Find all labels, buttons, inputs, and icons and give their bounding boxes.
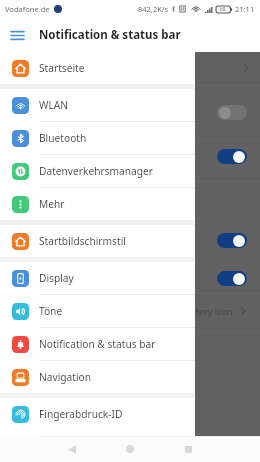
button[interactable]: Toggle on xyxy=(217,233,247,248)
staticText: WLAN xyxy=(39,98,69,112)
staticText: Startseite xyxy=(39,61,85,75)
staticText: Notification & status bar xyxy=(39,337,156,351)
button[interactable]: Startbildschirmstil xyxy=(0,225,195,257)
button[interactable]: Home xyxy=(117,436,143,462)
button[interactable]: WLAN xyxy=(0,89,195,121)
button[interactable]: Toggle on xyxy=(217,149,247,164)
button[interactable]: Display xyxy=(0,262,195,294)
button[interactable]: Notification & status bar xyxy=(0,328,195,360)
staticText: Notification & status bar xyxy=(39,27,181,43)
staticText: 21:11 xyxy=(235,4,255,14)
staticText: 68 xyxy=(220,6,226,13)
staticText: 842,2K/s xyxy=(138,4,169,14)
button[interactable]: Mehr xyxy=(0,188,195,220)
staticText: Töne xyxy=(39,304,63,318)
staticText: Navigation xyxy=(39,370,92,384)
staticText: Vodafone.de xyxy=(5,4,50,14)
staticText: Bluetooth xyxy=(39,131,87,145)
staticText: Mehr xyxy=(39,197,65,211)
button[interactable]: Open navigation drawer xyxy=(0,18,34,52)
button[interactable]: Back xyxy=(59,436,85,462)
staticText: Display xyxy=(39,271,74,285)
button[interactable]: Recents xyxy=(175,436,201,462)
button[interactable]: Datenverkehrsmanager xyxy=(0,155,195,187)
button[interactable]: Toggle on xyxy=(217,271,247,286)
button[interactable]: Startseite xyxy=(0,52,195,84)
staticText: Fingerabdruck-ID xyxy=(39,407,123,421)
staticText: battery icon xyxy=(182,305,233,317)
button[interactable]: Töne xyxy=(0,295,195,327)
staticText: Startbildschirmstil xyxy=(39,234,126,248)
staticText: Datenverkehrsmanager xyxy=(39,164,154,178)
button[interactable]: Navigation xyxy=(0,361,195,393)
button[interactable]: Fingerabdruck-ID xyxy=(0,398,195,430)
button[interactable]: Toggle off xyxy=(217,105,247,120)
button[interactable]: Bluetooth xyxy=(0,122,195,154)
